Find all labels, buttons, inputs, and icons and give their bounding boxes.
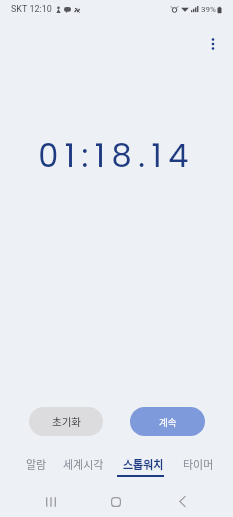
- staticText: 세계시각: [63, 456, 104, 472]
- button[interactable]: 알람: [26, 456, 47, 472]
- staticText: 01:18.14: [0, 133, 233, 178]
- button[interactable]: More options: [200, 31, 226, 57]
- staticText: SKT 12:10: [11, 4, 52, 15]
- button[interactable]: Home: [94, 486, 138, 517]
- button[interactable]: Recent apps: [29, 486, 73, 517]
- button[interactable]: 계속: [130, 407, 205, 436]
- staticText: 타이머: [183, 456, 214, 472]
- button[interactable]: 타이머: [183, 456, 214, 472]
- staticText: 알람: [26, 456, 47, 472]
- staticText: 초기화: [52, 414, 81, 429]
- staticText: 39%: [201, 5, 216, 14]
- staticText: 계속: [159, 415, 177, 429]
- button[interactable]: 세계시각: [63, 456, 104, 472]
- button[interactable]: Back: [160, 486, 204, 517]
- button[interactable]: 스톱워치: [120, 456, 167, 477]
- button[interactable]: 초기화: [29, 407, 103, 436]
- staticText: 스톱워치: [123, 456, 164, 472]
